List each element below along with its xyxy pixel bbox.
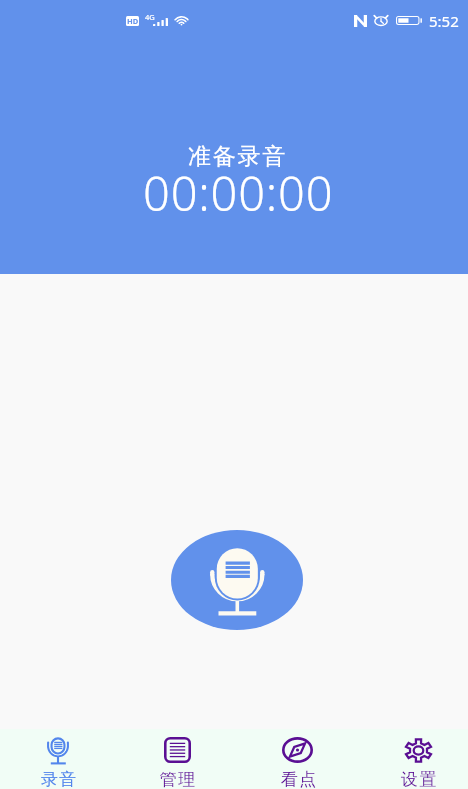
staticText: 5:52 [429, 11, 459, 31]
staticText: HD [127, 16, 139, 26]
staticText: 设置 [400, 769, 437, 789]
button[interactable]: 管理 [127, 729, 227, 789]
button[interactable]: 录音 [8, 729, 108, 789]
button[interactable]: Start recording [171, 530, 303, 630]
staticText: 00:00:00 [143, 161, 334, 225]
staticText: 看点 [280, 769, 317, 789]
staticText: 4G [145, 12, 155, 22]
staticText: 录音 [40, 769, 77, 789]
staticText: 管理 [159, 769, 196, 789]
button[interactable]: 设置 [368, 729, 468, 789]
staticText: 准备录音 [188, 142, 288, 171]
button[interactable]: 看点 [248, 729, 348, 789]
